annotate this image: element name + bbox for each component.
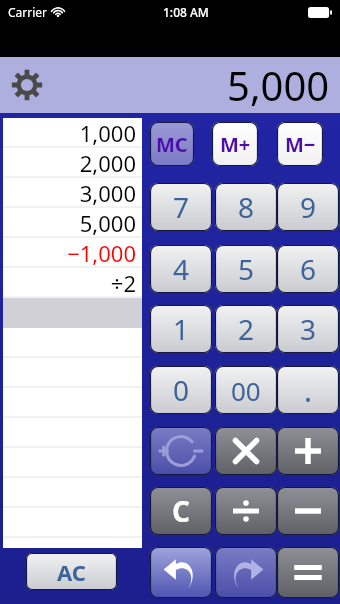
staticText: 2,000 [79, 148, 136, 178]
staticText: 5 [238, 250, 255, 288]
button[interactable]: 8 [215, 183, 277, 231]
staticText: 7 [173, 188, 190, 226]
staticText: AC [57, 557, 86, 587]
button[interactable]: 2 [215, 305, 277, 353]
button[interactable]: 1,000 [3, 118, 142, 548]
button[interactable]: MC [150, 122, 194, 166]
staticText: 3 [300, 310, 317, 348]
staticText: . [304, 370, 313, 411]
button[interactable]: 1 [150, 305, 212, 353]
staticText: 3,000 [79, 178, 136, 208]
button[interactable]: M+ [212, 122, 258, 166]
staticText: 1:08 AM [163, 4, 209, 20]
staticText: ÷2 [110, 268, 136, 298]
staticText: C [172, 492, 190, 530]
staticText: 5,000 [227, 58, 330, 112]
staticText: 00 [231, 373, 261, 408]
staticText: 5,000 [79, 208, 136, 238]
staticText: M− [285, 131, 316, 158]
button[interactable]: M− [277, 122, 323, 166]
button[interactable]: Equals [277, 547, 339, 598]
staticText: MC [156, 131, 188, 158]
button[interactable]: Plus minus toggle [150, 427, 212, 475]
button[interactable]: 0 [150, 366, 212, 414]
staticText: 2 [238, 310, 255, 348]
button[interactable]: C [150, 487, 212, 535]
button[interactable]: Settings [11, 69, 43, 101]
staticText: 1,000 [79, 118, 136, 148]
button[interactable]: Undo [150, 547, 212, 598]
button[interactable]: 9 [277, 183, 339, 231]
button[interactable]: Divide [215, 487, 277, 535]
button[interactable]: 00 [215, 366, 277, 414]
staticText: 4 [173, 250, 190, 288]
button[interactable]: Multiply [215, 427, 277, 475]
button[interactable]: Minus [277, 487, 339, 535]
staticText: Carrier [8, 4, 48, 20]
button[interactable]: 3 [277, 305, 339, 353]
button[interactable]: 6 [277, 245, 339, 293]
button[interactable]: . [277, 366, 339, 414]
button[interactable]: Redo [215, 547, 277, 598]
staticText: 6 [300, 250, 317, 288]
button[interactable]: 7 [150, 183, 212, 231]
staticText: 0 [173, 371, 190, 409]
staticText: 9 [300, 188, 317, 226]
staticText: M+ [220, 131, 251, 158]
button[interactable]: Plus [277, 427, 339, 475]
button[interactable]: 5 [215, 245, 277, 293]
staticText: 1 [173, 310, 190, 348]
button[interactable]: AC [26, 553, 117, 590]
button[interactable]: 4 [150, 245, 212, 293]
staticText: −1,000 [67, 238, 136, 268]
staticText: 8 [238, 188, 255, 226]
